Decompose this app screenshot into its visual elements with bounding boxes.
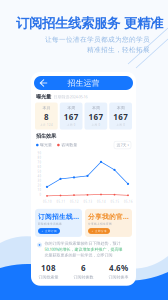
- staticText: 90: [37, 151, 41, 155]
- staticText: 05-14: [97, 200, 106, 203]
- button[interactable]: 返回: [38, 77, 49, 88]
- staticText: 订阅转换率: [108, 275, 128, 280]
- staticText: 167: [64, 111, 79, 122]
- staticText: 你的订阅学员线索量较昨日下降趋势，预计: [44, 241, 120, 246]
- staticText: 订阅招生线索服务 更精准: [16, 15, 163, 31]
- staticText: 05-10: [43, 200, 52, 203]
- staticText: 近7天: [116, 142, 126, 148]
- staticText: 上周 0: [91, 123, 100, 127]
- staticText: 167: [113, 111, 128, 122]
- staticText: 咨询数量: [61, 143, 77, 147]
- staticText: 上月 124: [40, 123, 53, 127]
- staticText: 50: [37, 170, 41, 173]
- staticText: 50-100%的增长，建议增加多种推广，提高曝: [44, 247, 122, 252]
- staticText: 分享线上招生官网: [88, 222, 112, 226]
- button[interactable]: 分享我的官网: [85, 209, 132, 237]
- staticText: 让每一位潜在学员都成为您的学员: [45, 35, 150, 44]
- staticText: 05-15: [110, 200, 119, 203]
- staticText: 20: [37, 184, 41, 187]
- staticText: 70: [37, 161, 41, 164]
- staticText: 本周: [92, 106, 100, 110]
- staticText: 订阅线索量: [38, 275, 58, 280]
- staticText: 立即分享: [95, 229, 107, 233]
- staticText: 80: [37, 156, 41, 159]
- staticText: 6: [81, 263, 86, 273]
- staticText: 30: [37, 179, 41, 182]
- staticText: 本周: [117, 106, 125, 110]
- staticText: 订阅转换数: [73, 275, 93, 280]
- staticText: 60: [37, 165, 41, 169]
- staticText: 立即订阅: [45, 229, 57, 233]
- staticText: 167: [88, 111, 103, 122]
- staticText: 曝光量: [40, 143, 52, 147]
- staticText: ＋: [41, 229, 44, 233]
- staticText: 本周: [67, 106, 75, 110]
- staticText: 分享我的官网: [88, 212, 129, 221]
- staticText: 日期筛选2024-05-16: [53, 94, 87, 99]
- staticText: 8: [44, 111, 49, 122]
- staticText: 10: [37, 188, 41, 192]
- staticText: 获取精准学员线索: [38, 222, 62, 226]
- staticText: 05-11: [56, 200, 65, 203]
- staticText: 订阅招生线索: [38, 212, 79, 221]
- staticText: 上周 0: [116, 123, 125, 127]
- button[interactable]: 近7天: [114, 141, 131, 149]
- staticText: 光量获取更多的新一轮学员，立即订阅: [44, 253, 112, 258]
- staticText: 曝光量: [36, 93, 51, 100]
- staticText: 招生运营: [67, 78, 99, 88]
- staticText: 05-16: [124, 200, 133, 203]
- staticText: 招生效果: [36, 133, 56, 139]
- staticText: 精准招生，轻松拓展: [87, 46, 150, 54]
- staticText: 4.6%: [109, 263, 128, 273]
- staticText: 05-13: [83, 200, 92, 203]
- button[interactable]: 订阅招生线索: [35, 209, 82, 237]
- staticText: 本月: [42, 106, 50, 110]
- staticText: 上周 0: [67, 123, 76, 127]
- staticText: 0: [39, 193, 41, 196]
- staticText: 108: [41, 263, 56, 273]
- staticText: ＋: [91, 229, 94, 233]
- staticText: 05-12: [70, 200, 79, 203]
- staticText: 40: [37, 174, 41, 178]
